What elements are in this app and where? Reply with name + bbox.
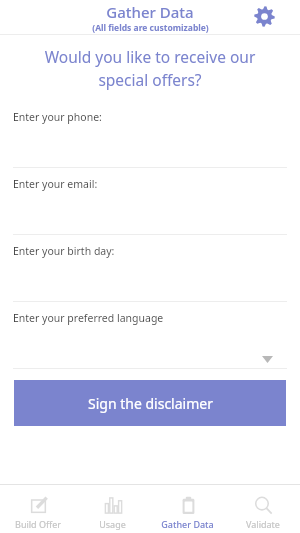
button[interactable]: Enter your phone: <box>0 101 300 168</box>
staticText: (All fields are customizable) <box>92 22 209 34</box>
button[interactable]: Enter your birth day: <box>0 235 300 302</box>
staticText: Enter your phone: <box>13 110 102 124</box>
staticText: Enter your email: <box>13 177 98 191</box>
button[interactable]: Enter your email: <box>0 168 300 235</box>
staticText: Enter your preferred language <box>13 311 164 325</box>
staticText: Build Offer <box>15 518 61 530</box>
staticText: Enter your birth day: <box>13 244 115 258</box>
button[interactable]: Enter your preferred language <box>0 302 300 369</box>
button[interactable]: Build Offer <box>0 485 75 533</box>
button[interactable]: Usage <box>75 485 150 533</box>
staticText: Usage <box>99 518 126 530</box>
button[interactable]: Settings <box>251 3 278 30</box>
button[interactable]: Sign the disclaimer <box>14 380 286 426</box>
button[interactable]: Validate <box>225 485 300 533</box>
staticText: Gather Data <box>106 2 194 22</box>
staticText: Would you like to receive our special of… <box>12 46 288 91</box>
button[interactable]: Gather Data <box>150 485 225 533</box>
staticText: Sign the disclaimer <box>88 394 213 413</box>
staticText: Validate <box>246 518 280 530</box>
staticText: Gather Data <box>161 518 214 530</box>
